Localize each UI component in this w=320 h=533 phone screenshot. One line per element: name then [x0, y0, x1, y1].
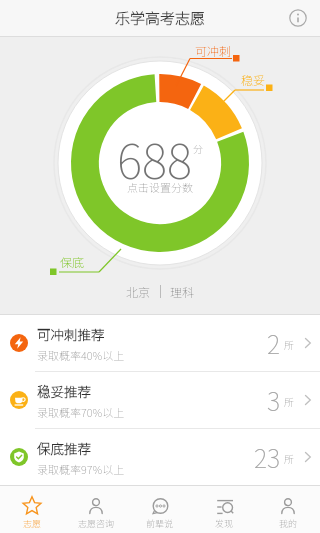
staticText: 688	[117, 123, 193, 193]
button[interactable]: 保底推荐	[0, 429, 320, 485]
staticText: 所	[284, 394, 294, 408]
button[interactable]: 前辈说	[128, 486, 192, 533]
button[interactable]: 发现	[192, 486, 256, 533]
staticText: 保底	[60, 253, 85, 270]
staticText: 志愿	[23, 517, 42, 530]
button[interactable]: 我的	[256, 486, 320, 533]
button[interactable]	[289, 9, 307, 27]
staticText: 录取概率40%以上	[37, 347, 125, 363]
staticText: 可冲刺	[195, 42, 232, 59]
staticText: 稳妥推荐	[37, 381, 91, 401]
staticText: 分	[193, 141, 203, 155]
button[interactable]: 志愿咨询	[64, 486, 128, 533]
staticText: 发现	[215, 517, 234, 530]
staticText: 稳妥	[241, 71, 266, 88]
button[interactable]: 可冲刺推荐	[0, 315, 320, 371]
staticText: 录取概率70%以上	[37, 404, 125, 420]
staticText: 所	[284, 451, 294, 465]
staticText: 3	[267, 382, 281, 418]
staticText: 我的	[279, 517, 298, 530]
staticText: 可冲刺推荐	[37, 324, 105, 344]
button[interactable]: 北京	[0, 283, 320, 300]
staticText: 2	[267, 325, 281, 361]
staticText: 23	[254, 439, 281, 475]
staticText: 点击设置分数	[127, 179, 193, 195]
staticText: 志愿咨询	[78, 517, 115, 530]
staticText: 理科	[170, 283, 195, 300]
staticText: 保底推荐	[37, 438, 91, 458]
staticText: 北京	[126, 283, 151, 300]
staticText: 乐学高考志愿	[115, 7, 206, 29]
staticText: 前辈说	[146, 517, 174, 530]
staticText: 所	[284, 337, 294, 351]
button[interactable]: 志愿	[0, 486, 64, 533]
button[interactable]: 稳妥推荐	[0, 372, 320, 428]
button[interactable]	[71, 74, 249, 252]
staticText: 录取概率97%以上	[37, 461, 125, 477]
